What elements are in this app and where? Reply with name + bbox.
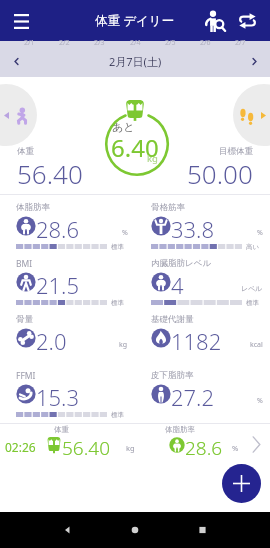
staticText: % (257, 396, 263, 406)
staticText: 4 (171, 270, 184, 300)
staticText: 6.40 (111, 131, 159, 164)
staticText: 2/2 (59, 38, 70, 45)
staticText: 27.2 (171, 382, 215, 412)
staticText: % (232, 443, 239, 453)
button[interactable]: Previous day (0, 45, 32, 77)
button[interactable]: Sync (232, 0, 262, 41)
staticText: 15.3 (36, 382, 80, 412)
button[interactable]: 体脂肪率 (0, 199, 135, 255)
button[interactable]: Menu (6, 6, 36, 36)
staticText: % (122, 228, 128, 238)
staticText: レベル (241, 284, 263, 293)
staticText: 28.6 (36, 214, 80, 244)
button[interactable]: 02:26 (0, 424, 270, 461)
button[interactable]: Next day (238, 45, 270, 77)
button[interactable]: 皮下脂肪率 (135, 367, 270, 423)
staticText: 骨格筋率 (151, 202, 185, 213)
staticText: 標準 (111, 299, 124, 307)
button[interactable]: Add record (222, 464, 261, 503)
staticText: 基礎代謝量 (151, 314, 194, 325)
staticText: あと (112, 120, 135, 134)
button[interactable]: Previous chart (0, 84, 37, 146)
staticText: 内臓脂肪レベル (151, 258, 212, 269)
staticText: BMI (16, 258, 33, 270)
staticText: 1182 (171, 326, 222, 356)
staticText: 56.40 (62, 435, 111, 461)
staticText: 体重 デイリー (95, 12, 175, 29)
staticText: 2/4 (130, 38, 141, 45)
staticText: FFMI (16, 370, 36, 382)
staticText: 体脂肪率 (165, 425, 195, 434)
staticText: 体重 (17, 146, 34, 157)
button[interactable]: BMI (0, 255, 135, 311)
button[interactable]: FFMI (0, 367, 135, 423)
staticText: 標準 (246, 299, 259, 307)
staticText: kcal (250, 340, 263, 350)
button[interactable]: Next chart (233, 84, 270, 146)
staticText: 50.00 (187, 156, 253, 191)
staticText: 02:26 (5, 439, 36, 455)
staticText: kg (126, 443, 135, 453)
staticText: 2/3 (94, 38, 105, 45)
staticText: kg (147, 152, 158, 165)
staticText: 2月7日(土) (109, 54, 162, 69)
staticText: 体脂肪率 (16, 202, 50, 213)
staticText: 目標体重 (219, 146, 253, 157)
staticText: 2/7 (235, 38, 246, 45)
button[interactable]: 内臓脂肪レベル (135, 255, 270, 311)
staticText: 体重 (54, 425, 69, 434)
staticText: 33.8 (171, 214, 215, 244)
staticText: 高い (246, 243, 260, 251)
staticText: 皮下脂肪率 (151, 370, 194, 381)
button[interactable]: Search person (199, 0, 231, 41)
staticText: 56.40 (17, 156, 83, 191)
staticText: % (257, 228, 263, 238)
staticText: 21.5 (36, 270, 80, 300)
staticText: 骨量 (16, 314, 33, 325)
staticText: 2/6 (200, 38, 211, 45)
staticText: 2/5 (165, 38, 176, 45)
button[interactable]: 骨格筋率 (135, 199, 270, 255)
staticText: kg (119, 340, 128, 350)
staticText: 2/1 (24, 38, 35, 45)
button[interactable]: 骨量 (0, 311, 135, 367)
staticText: 標準 (111, 243, 124, 251)
staticText: 標準 (111, 411, 124, 419)
staticText: 2.0 (36, 326, 67, 356)
staticText: 28.6 (185, 435, 223, 461)
button[interactable]: 基礎代謝量 (135, 311, 270, 367)
